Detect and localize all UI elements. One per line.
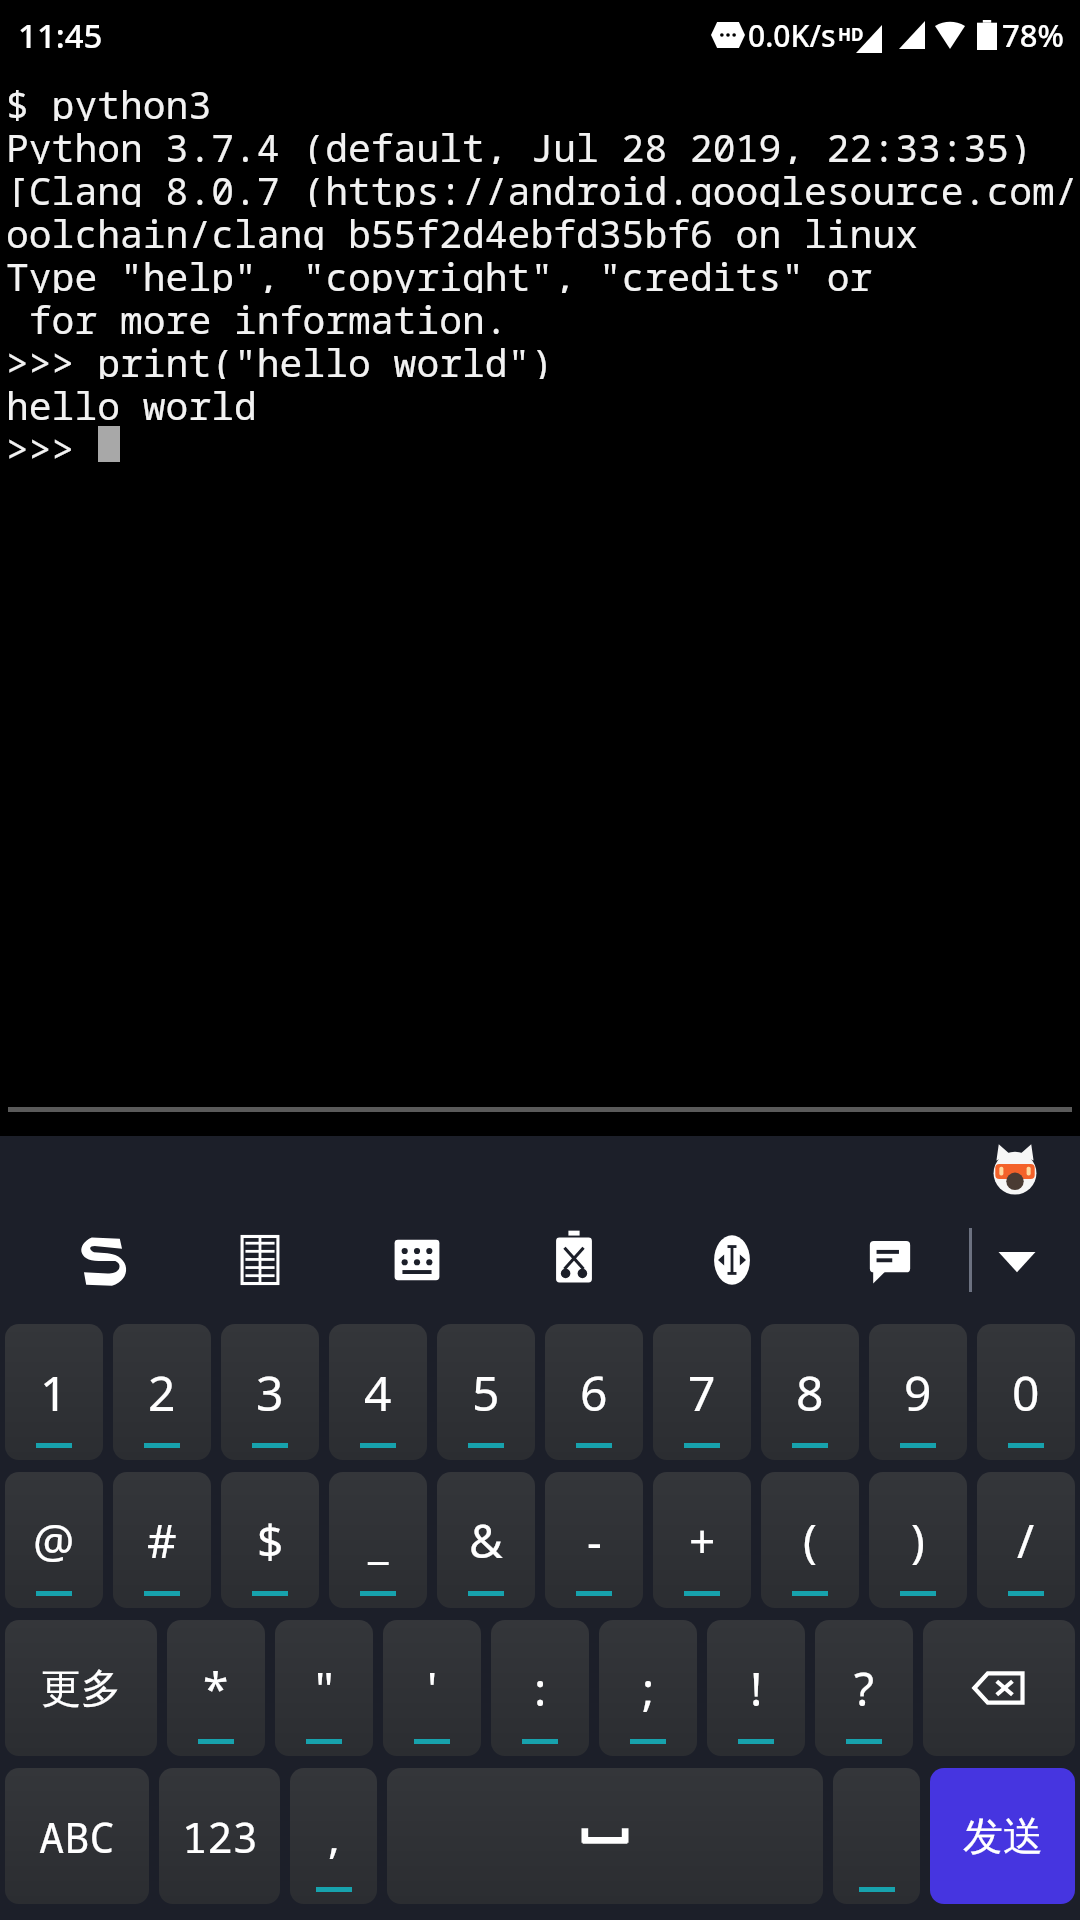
- button[interactable]: 3: [221, 1324, 319, 1460]
- button[interactable]: 9: [869, 1324, 967, 1460]
- button[interactable]: 1: [5, 1324, 103, 1460]
- button[interactable]: 0: [977, 1324, 1075, 1460]
- button[interactable]: Cursor move: [653, 1208, 811, 1312]
- staticText: ,: [328, 1806, 340, 1866]
- staticText: Type "help", "copyright", "credits" or "…: [6, 250, 1080, 293]
- button[interactable]: ?: [815, 1620, 913, 1756]
- staticText: $ python3: [6, 78, 212, 121]
- staticText: &: [469, 1509, 503, 1572]
- staticText: for more information.: [6, 293, 508, 336]
- staticText: @: [33, 1509, 75, 1572]
- staticText: !: [750, 1657, 763, 1720]
- button[interactable]: Send: [930, 1768, 1075, 1904]
- button[interactable]: (: [761, 1472, 859, 1608]
- staticText: 0: [1012, 1360, 1040, 1425]
- staticText: oolchain/clang b55f2d4ebfd35bf6 on linux: [6, 207, 919, 250]
- button[interactable]: #: [113, 1472, 211, 1608]
- staticText: (: [803, 1509, 817, 1572]
- staticText: $: [257, 1509, 284, 1572]
- button[interactable]: ): [869, 1472, 967, 1608]
- staticText: 7: [688, 1360, 716, 1425]
- button[interactable]: 2: [113, 1324, 211, 1460]
- staticText: ': [427, 1657, 438, 1720]
- staticText: 11:45: [18, 13, 103, 58]
- staticText: ABC: [39, 1808, 115, 1865]
- button[interactable]: ,: [290, 1768, 377, 1904]
- button[interactable]: 6: [545, 1324, 643, 1460]
- staticText: 5: [472, 1360, 500, 1425]
- staticText: 6: [580, 1360, 608, 1425]
- button[interactable]: ABC: [5, 1768, 149, 1904]
- button[interactable]: ;: [599, 1620, 697, 1756]
- button[interactable]: Space: [387, 1768, 823, 1904]
- staticText: *: [203, 1657, 229, 1720]
- button[interactable]: Period: [833, 1768, 920, 1904]
- button[interactable]: Keyboard layout: [338, 1208, 495, 1312]
- staticText: 8: [796, 1360, 824, 1425]
- staticText: 更多: [41, 1663, 121, 1713]
- button[interactable]: $: [221, 1472, 319, 1608]
- staticText: 0.0K/s: [748, 15, 836, 56]
- staticText: 3: [256, 1360, 284, 1425]
- staticText: 发送: [963, 1811, 1043, 1861]
- button[interactable]: !: [707, 1620, 805, 1756]
- button[interactable]: 123: [159, 1768, 280, 1904]
- button[interactable]: /: [977, 1472, 1075, 1608]
- staticText: #: [147, 1509, 177, 1572]
- staticText: 4: [364, 1360, 392, 1425]
- button[interactable]: &: [437, 1472, 535, 1608]
- button[interactable]: 7: [653, 1324, 751, 1460]
- button[interactable]: 更多: [5, 1620, 157, 1756]
- button[interactable]: -: [545, 1472, 643, 1608]
- staticText: Python 3.7.4 (default, Jul 28 2019, 22:3…: [6, 121, 1033, 164]
- button[interactable]: ': [383, 1620, 481, 1756]
- button[interactable]: @: [5, 1472, 103, 1608]
- staticText: 9: [904, 1360, 932, 1425]
- staticText: [Clang 8.0.7 (https://android.googlesour…: [6, 164, 1080, 207]
- staticText: ": [315, 1657, 334, 1720]
- button[interactable]: *: [167, 1620, 265, 1756]
- button[interactable]: 5: [437, 1324, 535, 1460]
- button[interactable]: :: [491, 1620, 589, 1756]
- staticText: 1: [40, 1360, 68, 1425]
- staticText: -: [587, 1509, 602, 1572]
- staticText: ?: [854, 1657, 874, 1720]
- staticText: +: [689, 1509, 716, 1572]
- button[interactable]: 8: [761, 1324, 859, 1460]
- button[interactable]: Phrases: [811, 1208, 969, 1312]
- staticText: /: [1017, 1509, 1035, 1572]
- staticText: HD: [838, 23, 864, 46]
- button[interactable]: Traditional Chinese: [181, 1208, 338, 1312]
- staticText: >>>: [6, 422, 98, 465]
- button[interactable]: ": [275, 1620, 373, 1756]
- button[interactable]: Hide keyboard: [972, 1208, 1062, 1312]
- button[interactable]: 4: [329, 1324, 427, 1460]
- button[interactable]: _: [329, 1472, 427, 1608]
- button[interactable]: Backspace: [923, 1620, 1075, 1756]
- button[interactable]: +: [653, 1472, 751, 1608]
- button[interactable]: Sogou input method: [24, 1208, 181, 1312]
- staticText: ;: [642, 1657, 655, 1720]
- staticText: hello world: [6, 379, 257, 422]
- staticText: _: [368, 1509, 389, 1572]
- button[interactable]: Assistant: [986, 1143, 1044, 1201]
- button[interactable]: Clipboard cut: [495, 1208, 653, 1312]
- staticText: 78%: [1002, 14, 1064, 56]
- staticText: :: [534, 1657, 547, 1720]
- staticText: >>> print("hello world"): [6, 336, 554, 379]
- staticText: ): [911, 1509, 925, 1572]
- staticText: 2: [148, 1360, 176, 1425]
- staticText: 123: [182, 1808, 258, 1865]
